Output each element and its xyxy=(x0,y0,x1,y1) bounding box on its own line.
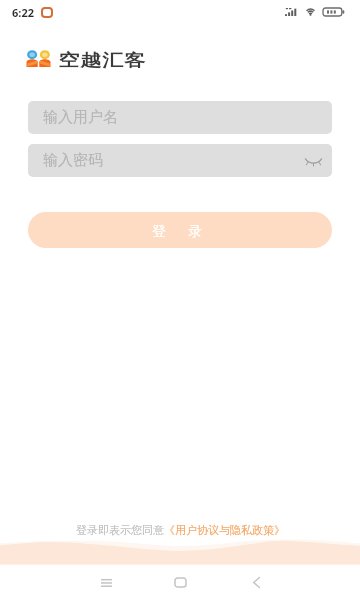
button[interactable]: 登 录 xyxy=(28,212,332,248)
staticText: 登 录 xyxy=(152,221,208,240)
button[interactable]: Recents xyxy=(86,565,126,600)
button[interactable]: 登录即表示您同意《用户协议与隐私政策》 xyxy=(76,523,285,537)
button[interactable]: 输入密码 xyxy=(28,144,332,177)
button[interactable]: Show password xyxy=(301,148,325,174)
staticText: 6:22 xyxy=(12,5,34,20)
staticText: 空越汇客 xyxy=(58,50,145,71)
staticText: 输入用户名 xyxy=(43,108,118,127)
button[interactable]: Home xyxy=(160,565,200,600)
staticText: 输入密码 xyxy=(43,151,103,170)
button[interactable]: 输入用户名 xyxy=(28,101,332,134)
button[interactable]: Back xyxy=(236,565,276,600)
